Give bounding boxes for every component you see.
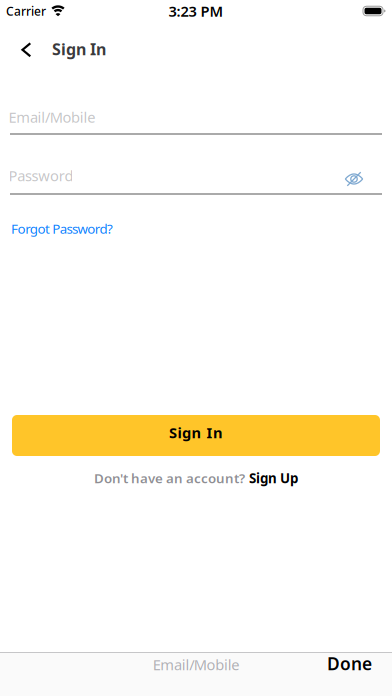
staticText: Password <box>8 166 73 185</box>
button[interactable]: Back <box>21 42 32 58</box>
button[interactable]: Sign In <box>12 415 380 456</box>
staticText: Done <box>327 652 372 675</box>
button[interactable]: Sign Up <box>249 469 298 487</box>
button[interactable]: Show password <box>344 171 363 186</box>
staticText: Don't have an account? <box>94 469 245 487</box>
staticText: Forgot Password? <box>11 220 113 237</box>
button[interactable]: Forgot Password? <box>12 220 114 237</box>
staticText: 3:23 PM <box>168 1 223 21</box>
staticText: Sign In <box>52 38 106 60</box>
button[interactable]: Done <box>327 653 372 676</box>
staticText: Sign In <box>169 423 223 442</box>
staticText: Email/Mobile <box>153 655 239 674</box>
staticText: Carrier <box>6 3 46 19</box>
staticText: Sign Up <box>249 469 298 487</box>
staticText: Email/Mobile <box>8 107 95 127</box>
